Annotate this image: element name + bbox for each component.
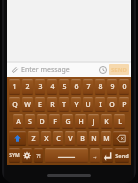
- button[interactable]: 7: [83, 79, 93, 95]
- button[interactable]: Attach: [9, 64, 20, 75]
- button[interactable]: K: [101, 114, 112, 129]
- button[interactable]: T: [59, 97, 69, 112]
- staticText: W: [24, 100, 31, 110]
- staticText: Q: [12, 100, 18, 110]
- staticText: ?!: [36, 152, 41, 160]
- staticText: 0: [122, 82, 127, 92]
- staticText: N: [91, 134, 97, 144]
- button[interactable]: G: [62, 114, 73, 129]
- staticText: 2: [25, 82, 30, 92]
- staticText: 7: [86, 82, 91, 92]
- button[interactable]: 8: [95, 79, 105, 95]
- button[interactable]: X: [41, 131, 51, 146]
- button[interactable]: W: [22, 97, 33, 112]
- button[interactable]: D: [37, 114, 47, 129]
- staticText: K: [104, 117, 109, 127]
- staticText: Send: [115, 152, 129, 159]
- button[interactable]: B: [77, 131, 87, 146]
- staticText: 6: [74, 82, 79, 92]
- button[interactable]: O: [107, 97, 117, 112]
- button[interactable]: Q: [9, 97, 20, 112]
- button[interactable]: 1: [9, 79, 20, 95]
- button[interactable]: 3: [35, 79, 45, 95]
- staticText: I: [99, 100, 102, 110]
- staticText: L: [118, 117, 122, 127]
- staticText: SEND: [111, 66, 127, 74]
- button[interactable]: SYM: [9, 148, 20, 163]
- button[interactable]: C: [53, 131, 63, 146]
- staticText: Enter message: [21, 65, 97, 75]
- button[interactable]: 0: [119, 79, 129, 95]
- button[interactable]: Z: [28, 131, 39, 146]
- button[interactable]: L: [114, 114, 125, 129]
- staticText: H: [78, 117, 84, 127]
- staticText: T: [62, 100, 66, 110]
- staticText: F: [53, 117, 57, 127]
- button[interactable]: Enter: [102, 148, 113, 163]
- staticText: X: [44, 134, 49, 144]
- staticText: 5: [62, 82, 67, 92]
- staticText: E: [38, 100, 42, 110]
- staticText: D: [39, 117, 45, 127]
- staticText: J: [92, 117, 95, 127]
- staticText: Y: [74, 100, 79, 110]
- button[interactable]: P: [119, 97, 129, 112]
- button[interactable]: Emoji: [97, 64, 108, 75]
- staticText: SYM: [9, 152, 20, 159]
- staticText: 1: [12, 82, 17, 92]
- button[interactable]: 4: [47, 79, 57, 95]
- button[interactable]: E: [35, 97, 45, 112]
- button[interactable]: U: [83, 97, 93, 112]
- button[interactable]: ?!: [34, 148, 43, 163]
- button[interactable]: Shift: [9, 131, 26, 146]
- button[interactable]: M: [101, 131, 111, 146]
- staticText: U: [85, 100, 91, 110]
- staticText: O: [109, 100, 115, 110]
- staticText: A: [16, 117, 21, 127]
- button[interactable]: 5: [59, 79, 69, 95]
- button[interactable]: Settings: [22, 148, 32, 163]
- button[interactable]: S: [25, 114, 35, 129]
- button[interactable]: 6: [71, 79, 81, 95]
- staticText: .,: [93, 152, 97, 160]
- button[interactable]: I: [95, 97, 105, 112]
- button[interactable]: V: [65, 131, 75, 146]
- button[interactable]: H: [75, 114, 86, 129]
- button[interactable]: Backspace: [113, 131, 129, 146]
- button[interactable]: 9: [107, 79, 117, 95]
- staticText: 3: [38, 82, 43, 92]
- button[interactable]: .,: [90, 148, 100, 163]
- staticText: S: [28, 117, 32, 127]
- staticText: V: [68, 134, 73, 144]
- button[interactable]: R: [47, 97, 57, 112]
- button[interactable]: Send: [115, 148, 129, 163]
- button[interactable]: J: [88, 114, 99, 129]
- staticText: R: [50, 100, 55, 110]
- button[interactable]: N: [89, 131, 99, 146]
- staticText: B: [80, 134, 85, 144]
- staticText: C: [56, 134, 61, 144]
- button[interactable]: Y: [71, 97, 81, 112]
- staticText: 8: [98, 82, 103, 92]
- staticText: 9: [110, 82, 115, 92]
- staticText: G: [65, 117, 71, 127]
- button[interactable]: A: [13, 114, 23, 129]
- button[interactable]: Space: [45, 148, 88, 163]
- button[interactable]: SEND: [109, 64, 129, 75]
- button[interactable]: F: [49, 114, 60, 129]
- staticText: 4: [50, 82, 55, 92]
- button[interactable]: 2: [22, 79, 33, 95]
- staticText: P: [122, 100, 127, 110]
- staticText: Z: [31, 134, 36, 144]
- staticText: M: [103, 134, 110, 144]
